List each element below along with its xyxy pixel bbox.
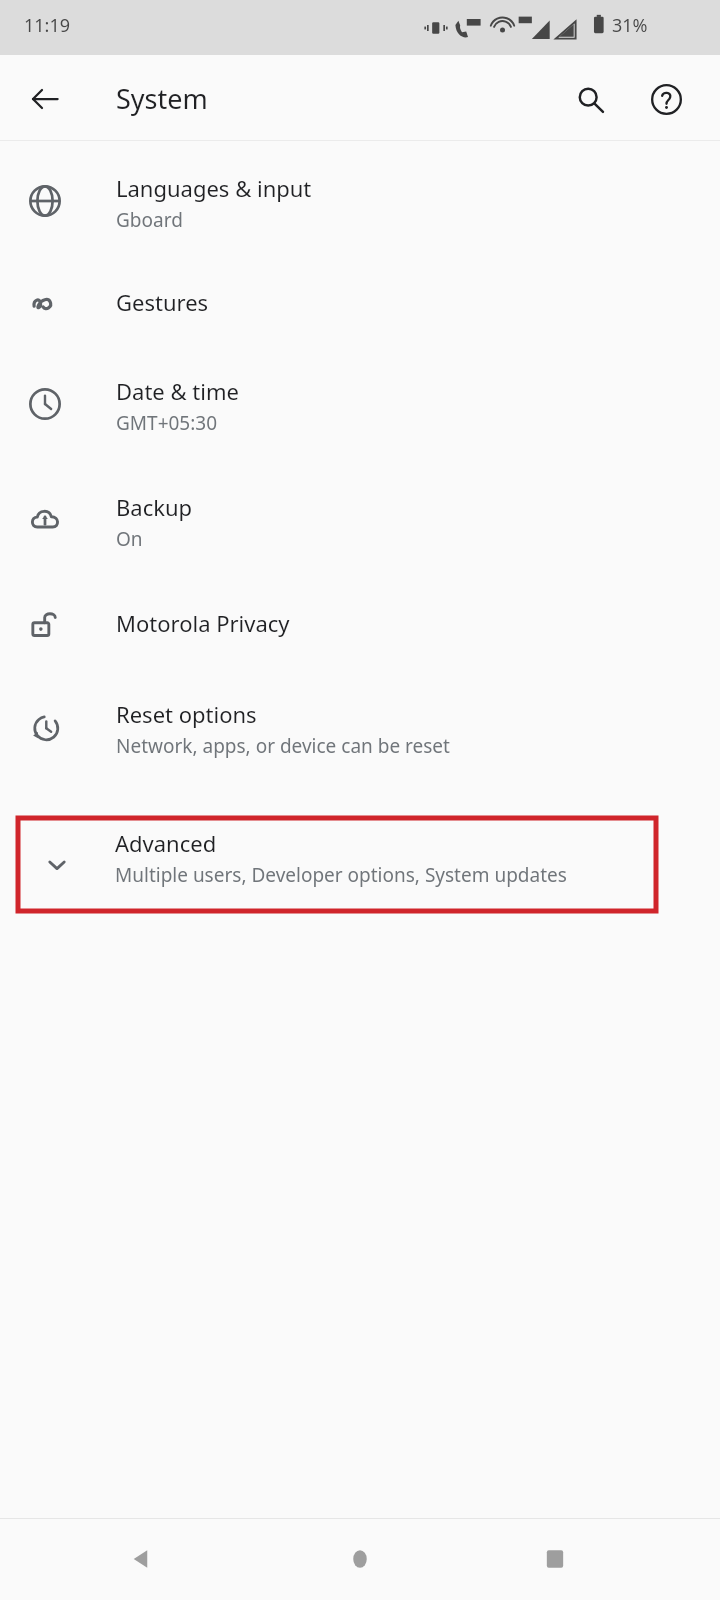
staticText: Gboard [116,207,183,233]
button[interactable]: Motorola Privacy [0,574,720,676]
staticText: Backup [116,492,193,522]
staticText: Reset options [116,699,257,729]
button[interactable]: Help [641,74,691,124]
staticText: Network, apps, or device can be reset [116,733,450,759]
staticText: Languages & input [116,173,312,203]
staticText: On [116,526,143,552]
staticText: System [116,80,208,117]
staticText: GMT+05:30 [116,410,218,436]
staticText: 11:19 [24,13,71,38]
button[interactable]: Back [20,74,70,124]
button[interactable]: Search [565,74,615,124]
staticText: 31% [612,13,648,38]
button[interactable]: Backup [0,469,720,574]
button[interactable]: Reset options [0,676,720,786]
button[interactable]: Recent apps [530,1534,580,1584]
button[interactable]: Home [335,1534,385,1584]
staticText: Multiple users, Developer options, Syste… [115,862,567,888]
staticText: Motorola Privacy [116,608,290,638]
button[interactable]: Back [116,1534,166,1584]
staticText: Advanced [115,828,217,858]
staticText: Gestures [116,287,209,317]
button[interactable]: Advanced [18,818,656,911]
button[interactable]: Date & time [0,354,720,469]
button[interactable]: Gestures [0,253,720,354]
button[interactable]: Languages & input [0,150,720,253]
staticText: Date & time [116,376,239,406]
